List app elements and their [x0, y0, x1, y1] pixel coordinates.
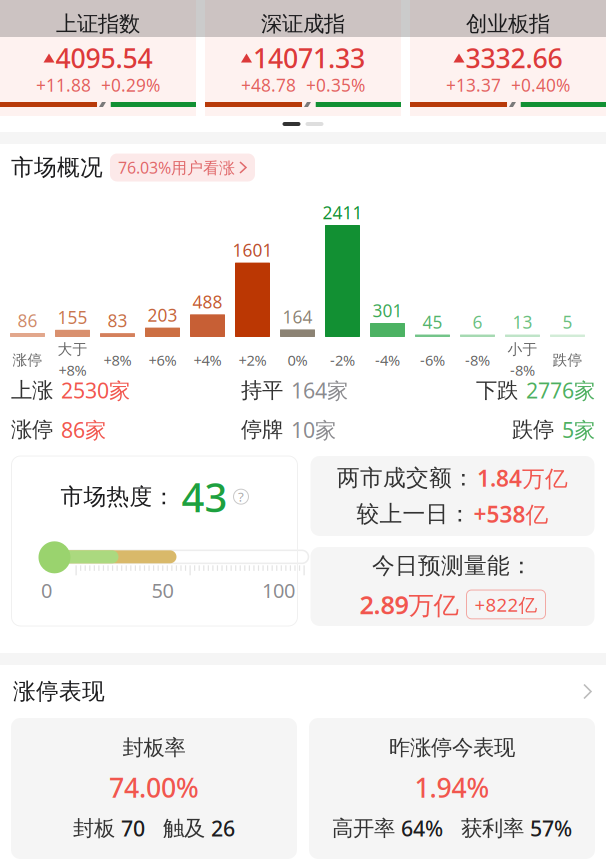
- staticText: 0%: [287, 350, 307, 370]
- staticText: 5: [562, 310, 572, 333]
- staticText: 跌停: [512, 417, 554, 443]
- staticText: +2%: [238, 350, 266, 370]
- staticText: 76.03%用户看涨: [118, 157, 235, 178]
- staticText: ?: [238, 488, 244, 505]
- staticText: -2%: [330, 350, 355, 370]
- staticText: 1.94%: [414, 770, 489, 805]
- staticText: 上涨: [11, 377, 53, 403]
- button[interactable]: 深证成指: [205, 0, 401, 116]
- staticText: +8%: [58, 360, 86, 380]
- staticText: 5家: [562, 415, 595, 444]
- staticText: +0.40%: [511, 73, 570, 96]
- staticText: 488: [192, 290, 222, 313]
- staticText: +13.37: [446, 73, 501, 96]
- button[interactable]: 上证指数: [0, 0, 196, 116]
- button[interactable]: 创业板指: [410, 0, 606, 116]
- staticText: -6%: [420, 350, 445, 370]
- staticText: 100: [262, 577, 295, 604]
- staticText: 2411: [322, 201, 362, 224]
- staticText: +4%: [193, 350, 221, 370]
- staticText: 83: [107, 309, 127, 332]
- staticText: 2776家: [526, 376, 595, 404]
- staticText: 64%: [401, 814, 443, 842]
- staticText: 市场概况: [11, 154, 103, 181]
- staticText: 45: [422, 310, 442, 333]
- staticText: 市场热度：: [60, 483, 175, 510]
- staticText: 大于: [57, 340, 87, 358]
- staticText: 203: [147, 304, 177, 327]
- staticText: +0.29%: [101, 73, 160, 96]
- staticText: 164: [282, 305, 312, 328]
- staticText: 74.00%: [109, 770, 199, 805]
- staticText: 86家: [61, 415, 106, 444]
- staticText: 86: [17, 309, 37, 332]
- staticText: 43: [181, 470, 227, 523]
- staticText: 创业板指: [466, 11, 550, 37]
- staticText: 26: [211, 814, 235, 842]
- staticText: 3332.66: [465, 40, 562, 76]
- staticText: +0.35%: [306, 73, 365, 96]
- staticText: 6: [472, 310, 482, 333]
- staticText: 涨停表现: [13, 678, 105, 705]
- staticText: +11.88: [36, 73, 91, 96]
- staticText: +822亿: [474, 592, 537, 617]
- staticText: -8%: [465, 350, 490, 370]
- staticText: 封板率: [122, 734, 185, 761]
- staticText: 持平: [241, 377, 283, 403]
- staticText: 4095.54: [55, 40, 152, 76]
- button[interactable]: 76.03%用户看涨: [110, 153, 255, 181]
- staticText: 301: [372, 299, 402, 322]
- staticText: 较上一日：: [356, 500, 471, 528]
- staticText: 停牌: [241, 417, 283, 443]
- staticText: 164家: [291, 376, 348, 404]
- staticText: 跌停: [552, 351, 582, 369]
- staticText: 封板: [73, 815, 115, 841]
- staticText: 昨涨停今表现: [389, 734, 515, 761]
- staticText: 70: [121, 814, 145, 842]
- staticText: 高开率: [332, 815, 395, 841]
- staticText: +48.78: [241, 73, 296, 96]
- staticText: 2.89万亿: [359, 588, 458, 621]
- staticText: 2530家: [61, 376, 130, 404]
- staticText: 今日预测量能：: [372, 552, 533, 580]
- staticText: 涨停: [11, 417, 53, 443]
- staticText: 57%: [530, 814, 572, 842]
- staticText: 下跌: [476, 377, 518, 403]
- staticText: 50: [151, 577, 173, 604]
- staticText: -8%: [510, 360, 535, 380]
- staticText: 涨停: [12, 351, 42, 369]
- staticText: 14071.33: [253, 40, 365, 76]
- staticText: 155: [57, 306, 87, 329]
- staticText: 0: [41, 577, 52, 604]
- staticText: 两市成交额：: [337, 464, 475, 492]
- staticText: 触及: [163, 815, 205, 841]
- staticText: 1601: [232, 239, 272, 262]
- staticText: 13: [512, 310, 532, 333]
- button[interactable]: 涨停表现: [0, 665, 606, 718]
- staticText: 10家: [291, 415, 336, 444]
- staticText: 获利率: [461, 815, 524, 841]
- staticText: 小于: [507, 340, 537, 358]
- staticText: +6%: [148, 350, 176, 370]
- staticText: -4%: [375, 350, 400, 370]
- staticText: +8%: [103, 350, 131, 370]
- staticText: 深证成指: [261, 11, 345, 37]
- staticText: 1.84万亿: [477, 463, 568, 493]
- staticText: 上证指数: [56, 11, 140, 37]
- staticText: +538亿: [473, 499, 548, 529]
